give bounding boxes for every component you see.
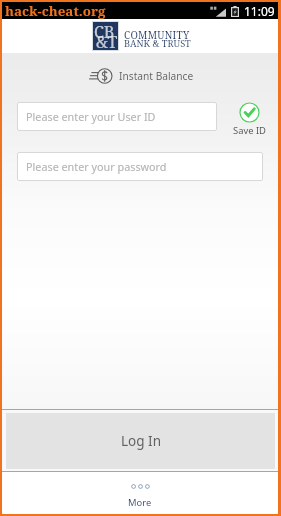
button[interactable]: Please enter your password	[17, 152, 263, 181]
staticText: hack-cheat.org	[5, 2, 106, 19]
button[interactable]: Please enter your User ID	[17, 102, 217, 131]
other: More	[132, 484, 149, 489]
button[interactable]: More	[2, 472, 278, 514]
staticText: BANK & TRUST	[124, 37, 191, 50]
other: Instant Balance	[87, 68, 114, 84]
staticText: CB	[94, 21, 115, 43]
staticText: More	[128, 496, 152, 509]
staticText: &T	[96, 31, 118, 53]
other: Battery charging	[231, 6, 239, 17]
button[interactable]: Instant Balance	[2, 67, 278, 85]
staticText: 11:09	[244, 3, 275, 19]
staticText: Save ID	[233, 124, 266, 137]
staticText: Please enter your User ID	[26, 109, 156, 124]
staticText: Please enter your password	[26, 159, 167, 174]
staticText: Instant Balance	[119, 69, 194, 83]
button[interactable]: Save ID	[233, 102, 266, 137]
staticText: Log In	[121, 432, 161, 450]
other: Save ID	[239, 102, 260, 123]
button[interactable]: Log In	[6, 413, 275, 469]
staticText: COMMUNITY	[124, 28, 190, 42]
